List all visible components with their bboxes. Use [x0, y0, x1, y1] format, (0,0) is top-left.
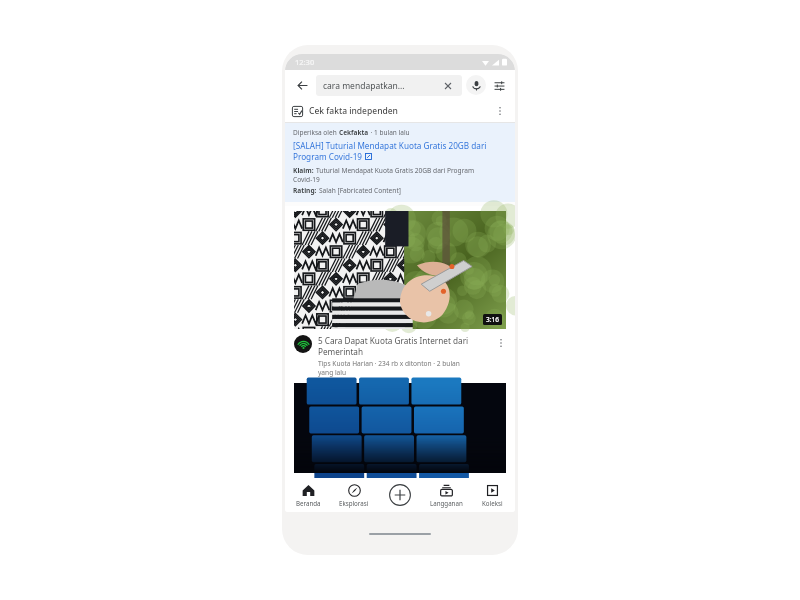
staticText: Koleksi — [482, 499, 503, 507]
button[interactable]: Koleksi — [469, 478, 515, 512]
staticText: Pemerintah — [318, 346, 364, 357]
staticText: Cek fakta independen — [309, 105, 492, 117]
staticText: Beranda — [296, 499, 321, 507]
button[interactable]: Create — [377, 478, 423, 512]
staticText: 12:30 — [295, 57, 315, 67]
staticText: Eksplorasi — [339, 499, 369, 507]
staticText: yang lalu — [318, 368, 347, 377]
staticText: · 1 bulan lalu — [369, 128, 410, 137]
button[interactable]: Eksplorasi — [331, 478, 377, 512]
button[interactable]: cara mendapatkan... — [316, 75, 462, 96]
staticText: Rating: — [293, 186, 319, 195]
button[interactable]: Diperiksa oleh — [285, 123, 515, 202]
button[interactable]: Search filters — [489, 75, 509, 95]
staticText: Tuturial Mendapat Kuota Gratis 20GB dari… — [316, 166, 475, 175]
staticText: Cekfakta — [339, 128, 369, 137]
staticText: Salah [Fabricated Content] — [319, 186, 401, 195]
staticText: 3:16 — [486, 315, 499, 324]
button[interactable]: Back — [291, 74, 313, 96]
button[interactable] — [285, 377, 515, 473]
staticText: Program Covid-19 — [293, 151, 365, 162]
staticText: Tips Kuota Harian · 234 rb x ditonton · … — [318, 359, 460, 368]
button[interactable]: Langganan — [423, 478, 469, 512]
button[interactable]: More options — [492, 103, 508, 119]
button[interactable]: Beranda — [285, 478, 331, 512]
button[interactable]: Channel avatar — [294, 335, 312, 353]
button[interactable]: 3:16 — [285, 206, 515, 377]
staticText: [SALAH] Tuturial Mendapat Kuota Gratis 2… — [293, 140, 487, 151]
staticText: Klaim: — [293, 166, 316, 175]
staticText: Diperiksa oleh — [293, 128, 339, 137]
button[interactable]: Clear — [441, 79, 455, 93]
staticText: Covid-19 — [293, 175, 320, 184]
button[interactable]: Video options — [493, 335, 509, 351]
staticText: cara mendapatkan... — [323, 80, 441, 92]
staticText: Langganan — [430, 499, 463, 507]
staticText: 5 Cara Dapat Kuota Gratis Internet dari — [318, 335, 469, 346]
button[interactable]: Cek fakta independen — [285, 100, 515, 122]
button[interactable]: Voice search — [466, 75, 486, 95]
